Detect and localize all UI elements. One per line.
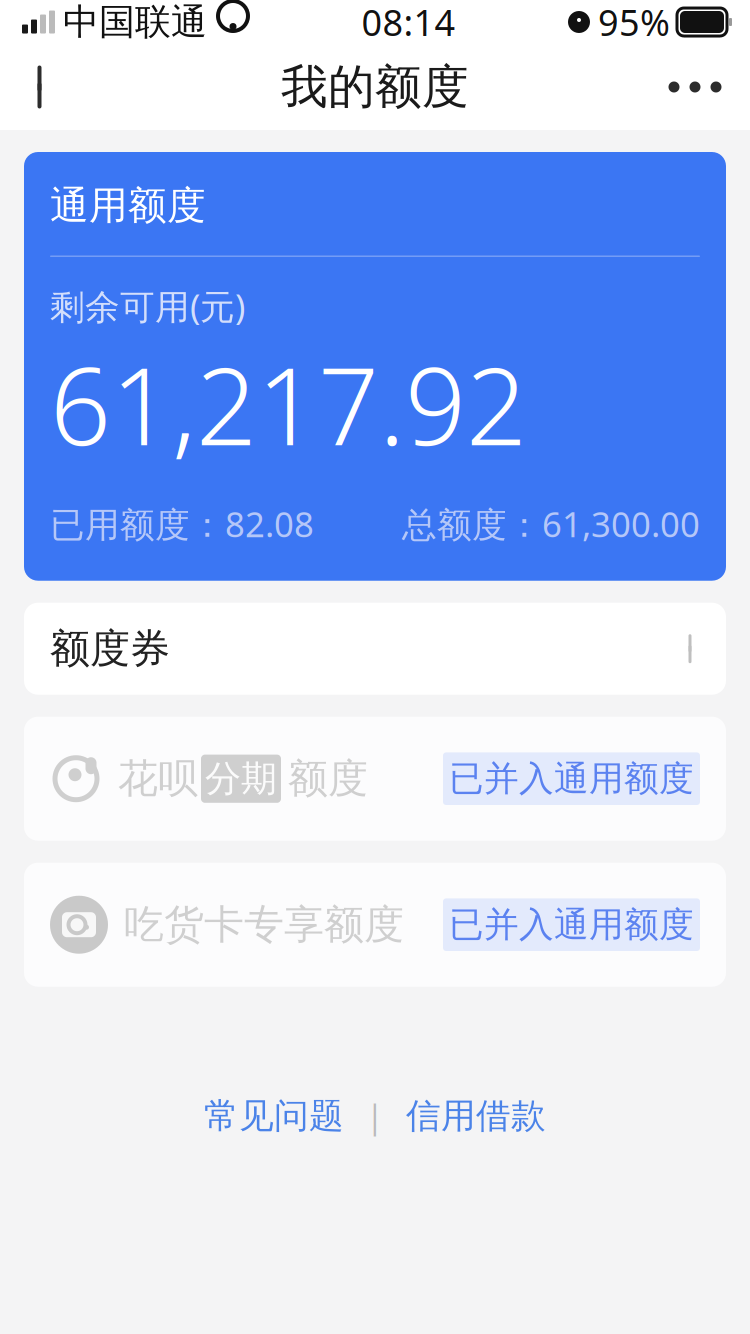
staticText: 花呗 [118, 754, 198, 803]
staticText: 总额度：61,300.00 [402, 501, 700, 547]
staticText: 额度 [288, 754, 368, 803]
staticText: 中国联通 [63, 0, 207, 44]
button[interactable]: 更多 [640, 44, 750, 130]
staticText: 常见问题 [204, 1095, 344, 1137]
staticText: 61,217.92 [50, 333, 527, 475]
button[interactable]: 吃货卡专享额度 [24, 863, 726, 987]
staticText: 信用借款 [406, 1095, 546, 1137]
staticText: 通用额度 [50, 182, 206, 229]
staticText: 分期 [205, 757, 277, 801]
staticText: 额度券 [50, 624, 170, 673]
staticText: 剩余可用(元) [50, 283, 245, 329]
staticText: 我的额度 [281, 58, 469, 116]
staticText: 已并入通用额度 [449, 903, 694, 946]
staticText: 已并入通用额度 [449, 757, 694, 800]
button[interactable]: 额度券 [24, 603, 726, 695]
staticText: 95% [598, 0, 670, 46]
staticText: | [366, 1095, 384, 1137]
staticText: 已用额度：82.08 [50, 501, 314, 547]
staticText: 08:14 [361, 0, 455, 46]
button[interactable]: 常见问题 [194, 1087, 354, 1145]
button[interactable]: 信用借款 [396, 1087, 556, 1145]
button[interactable]: 花呗分期额度 [24, 717, 726, 841]
button[interactable]: 返回 [0, 44, 88, 130]
staticText: 吃货卡专享额度 [124, 900, 404, 949]
